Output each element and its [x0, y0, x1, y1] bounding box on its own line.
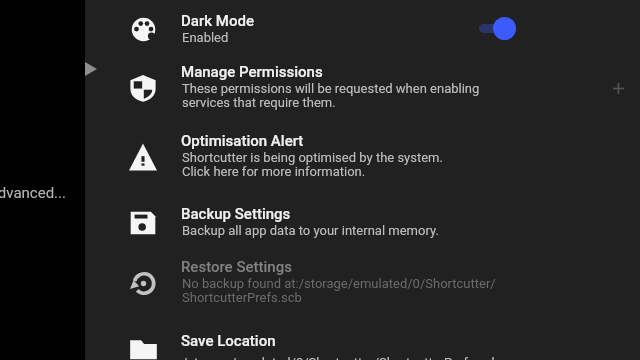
button[interactable]: Dark Mode switch	[477, 15, 521, 41]
button[interactable]: Add shortcut	[607, 77, 629, 99]
button[interactable]: Backup Settings	[85, 203, 640, 238]
staticText: Restore Settings	[181, 258, 292, 276]
staticText: No backup found at:/storage/emulated/0/S…	[182, 276, 496, 305]
button[interactable]: Restore Settings	[85, 256, 640, 305]
staticText: Manage Permissions	[181, 63, 323, 81]
button[interactable]: Dark Mode	[85, 10, 640, 45]
staticText: Backup all app data to your internal mem…	[182, 223, 439, 238]
staticText: Save Location	[181, 332, 276, 350]
staticText: Enabled	[182, 30, 229, 45]
staticText: Optimisation Alert	[181, 132, 304, 150]
button[interactable]: Save Location	[85, 330, 640, 360]
staticText: Backup Settings	[181, 205, 291, 223]
staticText: /storage/emulated/0/Shortcutter/Shortcut…	[182, 355, 499, 360]
button[interactable]: Manage Permissions	[85, 61, 640, 110]
button[interactable]: Open navigation drawer	[85, 62, 97, 76]
staticText: These permissions will be requested when…	[182, 81, 480, 110]
button[interactable]: Advanced...	[0, 184, 66, 202]
staticText: Dark Mode	[181, 12, 254, 30]
button[interactable]: Optimisation Alert	[85, 130, 640, 179]
staticText: Shortcutter is being optimised by the sy…	[182, 150, 443, 179]
